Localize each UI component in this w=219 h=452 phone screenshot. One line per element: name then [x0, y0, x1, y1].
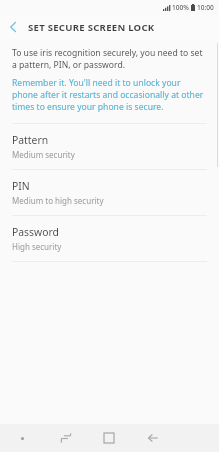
staticText: PIN	[12, 179, 30, 193]
staticText: Medium to high security	[12, 195, 104, 206]
button[interactable]: Home	[87, 424, 131, 452]
staticText: 10:00	[197, 3, 214, 12]
button[interactable]: PIN	[0, 170, 219, 215]
staticText: 100%	[172, 3, 189, 12]
staticText: SET SECURE SCREEN LOCK	[28, 21, 155, 34]
staticText: Password	[12, 225, 59, 239]
staticText: Pattern	[12, 133, 49, 147]
staticText: Medium security	[12, 149, 75, 160]
staticText: To use iris recognition securely, you ne…	[12, 47, 205, 71]
staticText: Remember it. You'll need it to unlock yo…	[12, 77, 205, 113]
button[interactable]: Password	[0, 216, 219, 261]
button[interactable]: Recents	[44, 424, 87, 452]
button[interactable]: Pattern	[0, 124, 219, 169]
staticText: High security	[12, 241, 62, 252]
button[interactable]: Back	[0, 15, 26, 39]
button[interactable]: Back	[131, 424, 175, 452]
